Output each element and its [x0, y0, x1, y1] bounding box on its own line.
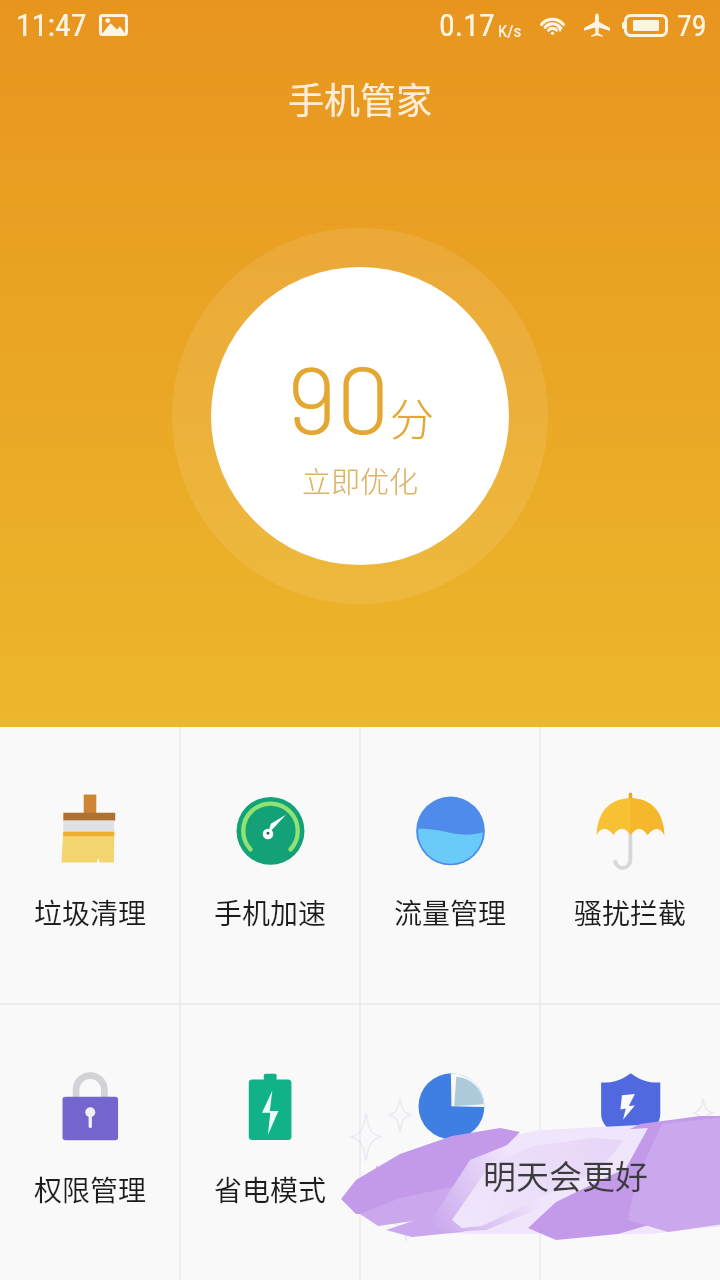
staticText: 90 [287, 339, 390, 453]
staticText: 骚扰拦截 [574, 892, 687, 933]
button[interactable]: 省电模式 [180, 1004, 360, 1280]
staticText: 手机管家 [288, 72, 433, 124]
button[interactable]: 流量管理 [360, 727, 540, 1004]
staticText: 病毒查杀 [574, 1169, 687, 1210]
staticText: 安全检测 [394, 1169, 507, 1210]
button[interactable]: 垃圾清理 [0, 727, 180, 1004]
staticText: 垃圾清理 [34, 892, 147, 933]
staticText: 0.17 [439, 6, 495, 44]
button[interactable]: 权限管理 [0, 1004, 180, 1280]
button[interactable]: 病毒查杀 [540, 1004, 720, 1280]
button[interactable]: 立即优化 [172, 228, 548, 604]
button[interactable]: 安全检测 [360, 1004, 540, 1280]
button[interactable]: 骚扰拦截 [540, 727, 720, 1004]
staticText: 手机加速 [214, 892, 327, 933]
staticText: K/s [498, 21, 522, 41]
staticText: 省电模式 [214, 1169, 327, 1210]
staticText: 79 [677, 8, 707, 43]
staticText: 11:47 [16, 6, 87, 44]
staticText: 权限管理 [34, 1169, 147, 1210]
button[interactable]: 手机加速 [180, 727, 360, 1004]
staticText: 立即优化 [302, 459, 419, 501]
staticText: 分 [390, 385, 434, 449]
staticText: 明天会更好 [483, 1151, 648, 1199]
staticText: 流量管理 [394, 892, 507, 933]
